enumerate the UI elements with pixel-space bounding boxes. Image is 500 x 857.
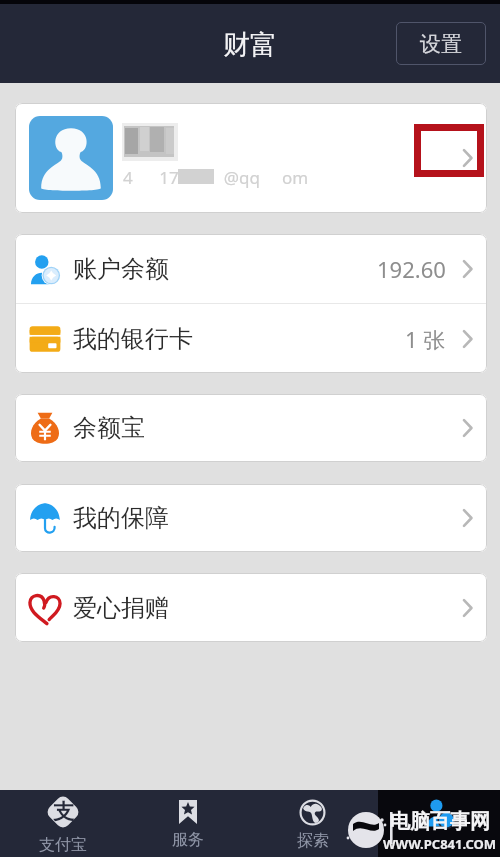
button[interactable]: 我的银行卡 xyxy=(15,304,487,373)
button[interactable]: 服务 xyxy=(125,790,250,857)
staticText: 设置 xyxy=(420,31,462,57)
staticText: 支 xyxy=(53,799,74,825)
button[interactable]: 财富 xyxy=(375,790,500,857)
staticText: 我的保障 xyxy=(73,503,169,533)
staticText: 电脑百事网 xyxy=(390,809,490,834)
staticText: 服务 xyxy=(172,830,204,850)
button[interactable]: 余额宝 xyxy=(15,394,487,462)
staticText: 财富 xyxy=(223,28,277,62)
button[interactable]: 4 172 @qq om xyxy=(15,103,487,213)
staticText: 爱心捐赠 xyxy=(73,593,169,623)
button[interactable]: 爱心捐赠 xyxy=(15,573,487,642)
staticText: 4 172 @qq om xyxy=(123,166,309,189)
staticText: 1 张 xyxy=(405,324,446,354)
staticText: 192.60 xyxy=(377,254,446,284)
staticText: 我的银行卡 xyxy=(73,324,193,354)
staticText: 探索 xyxy=(297,831,329,851)
staticText: WWW.PC841.COM xyxy=(383,835,497,853)
button[interactable]: 探索 xyxy=(250,790,375,857)
button[interactable]: 支 xyxy=(0,790,125,857)
staticText: 余额宝 xyxy=(73,413,145,443)
button[interactable]: 设置 xyxy=(396,22,486,65)
button[interactable]: 账户余额 xyxy=(15,234,487,303)
button[interactable]: 我的保障 xyxy=(15,484,487,552)
staticText: 支付宝 xyxy=(39,835,87,855)
staticText: 账户余额 xyxy=(73,254,169,284)
